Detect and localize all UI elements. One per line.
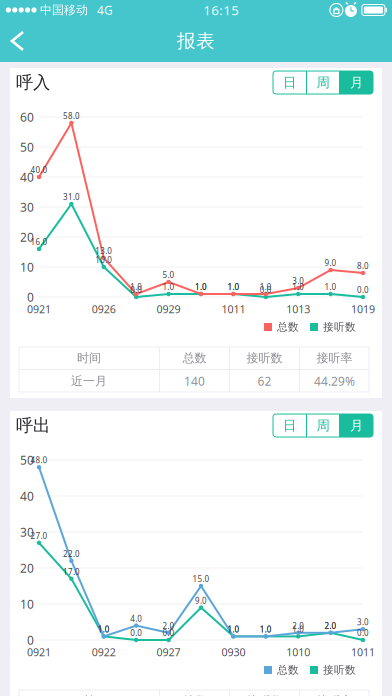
staticText: 接听数: [323, 663, 356, 676]
staticText: 0.0: [357, 628, 369, 638]
staticText: 58.0: [63, 111, 80, 121]
staticText: 1011: [351, 645, 375, 659]
staticText: 140: [184, 373, 205, 389]
button[interactable]: 月: [340, 414, 373, 437]
staticText: 1.0: [163, 282, 175, 292]
staticText: 9.0: [325, 258, 337, 268]
staticText: 60: [20, 109, 34, 125]
button[interactable]: Back: [6, 27, 36, 55]
staticText: 9.0: [195, 595, 207, 606]
button[interactable]: 周: [307, 414, 339, 437]
staticText: 总数: [277, 320, 299, 333]
staticText: 15.0: [192, 574, 209, 584]
staticText: 1019: [351, 302, 375, 316]
button[interactable]: 周: [307, 71, 339, 94]
staticText: 0921: [27, 302, 51, 316]
staticText: 1013: [286, 302, 310, 316]
staticText: 4.0: [130, 613, 142, 624]
staticText: 0.0: [130, 628, 142, 638]
staticText: 3.0: [292, 276, 304, 286]
staticText: 0921: [27, 645, 51, 659]
staticText: 0929: [157, 302, 181, 316]
staticText: 1.0: [292, 624, 304, 635]
staticText: 10: [20, 596, 34, 612]
button[interactable]: 月: [340, 71, 373, 94]
staticText: 0927: [157, 645, 181, 659]
staticText: 周: [316, 74, 329, 91]
staticText: 总数: [182, 694, 206, 696]
staticText: 接听数: [323, 320, 356, 333]
staticText: 1.0: [260, 624, 272, 635]
staticText: 2.0: [292, 620, 304, 631]
staticText: 10.0: [95, 255, 112, 265]
staticText: 0.0: [357, 285, 369, 295]
staticText: 月: [350, 417, 363, 434]
staticText: 3.0: [357, 617, 369, 627]
staticText: 周: [316, 417, 329, 434]
staticText: 4G: [88, 2, 113, 18]
staticText: 5.0: [163, 270, 175, 280]
staticText: 62: [257, 373, 271, 389]
staticText: 30: [20, 524, 34, 540]
staticText: 时间: [77, 694, 101, 696]
staticText: 27.0: [30, 530, 47, 541]
staticText: 1.0: [292, 282, 304, 292]
staticText: 1.0: [260, 282, 272, 292]
staticText: 0922: [92, 645, 116, 659]
staticText: 1.0: [195, 282, 207, 292]
staticText: 1.0: [130, 282, 142, 292]
staticText: 0.0: [130, 285, 142, 295]
staticText: 1011: [221, 302, 245, 316]
staticText: 8.0: [357, 261, 369, 271]
staticText: 1.0: [227, 624, 239, 635]
staticText: 2.0: [325, 620, 337, 631]
staticText: 1.0: [98, 624, 110, 635]
button[interactable]: 日: [273, 71, 306, 94]
staticText: 近一月: [71, 374, 107, 388]
staticText: 22.0: [63, 548, 80, 559]
staticText: 16:15: [203, 1, 239, 19]
staticText: 1.0: [195, 282, 207, 292]
staticText: 月: [350, 74, 363, 91]
staticText: 1.0: [325, 282, 337, 292]
staticText: 呼入: [16, 72, 50, 93]
staticText: 接听率: [316, 351, 352, 365]
staticText: 接听数: [246, 351, 282, 365]
staticText: 13.0: [95, 246, 112, 256]
staticText: 接听率: [316, 694, 352, 696]
staticText: 2.0: [163, 620, 175, 631]
staticText: 50: [20, 139, 34, 155]
staticText: 0: [27, 289, 34, 305]
staticText: 1010: [286, 645, 310, 659]
staticText: 50: [20, 452, 34, 468]
staticText: 1.0: [227, 624, 239, 635]
staticText: 40: [20, 488, 34, 504]
staticText: 0.0: [260, 285, 272, 295]
staticText: 2.0: [325, 620, 337, 631]
staticText: 接听数: [246, 694, 282, 696]
staticText: 日: [283, 417, 296, 434]
staticText: 1.0: [260, 624, 272, 635]
staticText: 48.0: [30, 455, 47, 465]
staticText: 30: [20, 199, 34, 215]
staticText: 0: [27, 632, 34, 648]
staticText: 0.0: [163, 628, 175, 638]
button[interactable]: 日: [273, 414, 306, 437]
staticText: 16.0: [30, 237, 47, 247]
staticText: 17.0: [63, 566, 80, 577]
staticText: 时间: [77, 351, 101, 365]
staticText: 31.0: [63, 192, 80, 202]
staticText: 1.0: [227, 282, 239, 292]
staticText: 呼出: [16, 415, 50, 436]
staticText: 报表: [177, 29, 215, 52]
staticText: 1.0: [98, 624, 110, 635]
staticText: 10: [20, 259, 34, 275]
staticText: 总数: [182, 351, 206, 365]
staticText: 20: [20, 560, 34, 576]
staticText: 40: [20, 169, 34, 185]
staticText: 44.29%: [314, 373, 355, 389]
staticText: 日: [283, 74, 296, 91]
staticText: 总数: [277, 663, 299, 676]
staticText: 40.0: [30, 165, 47, 175]
staticText: 20: [20, 229, 34, 245]
